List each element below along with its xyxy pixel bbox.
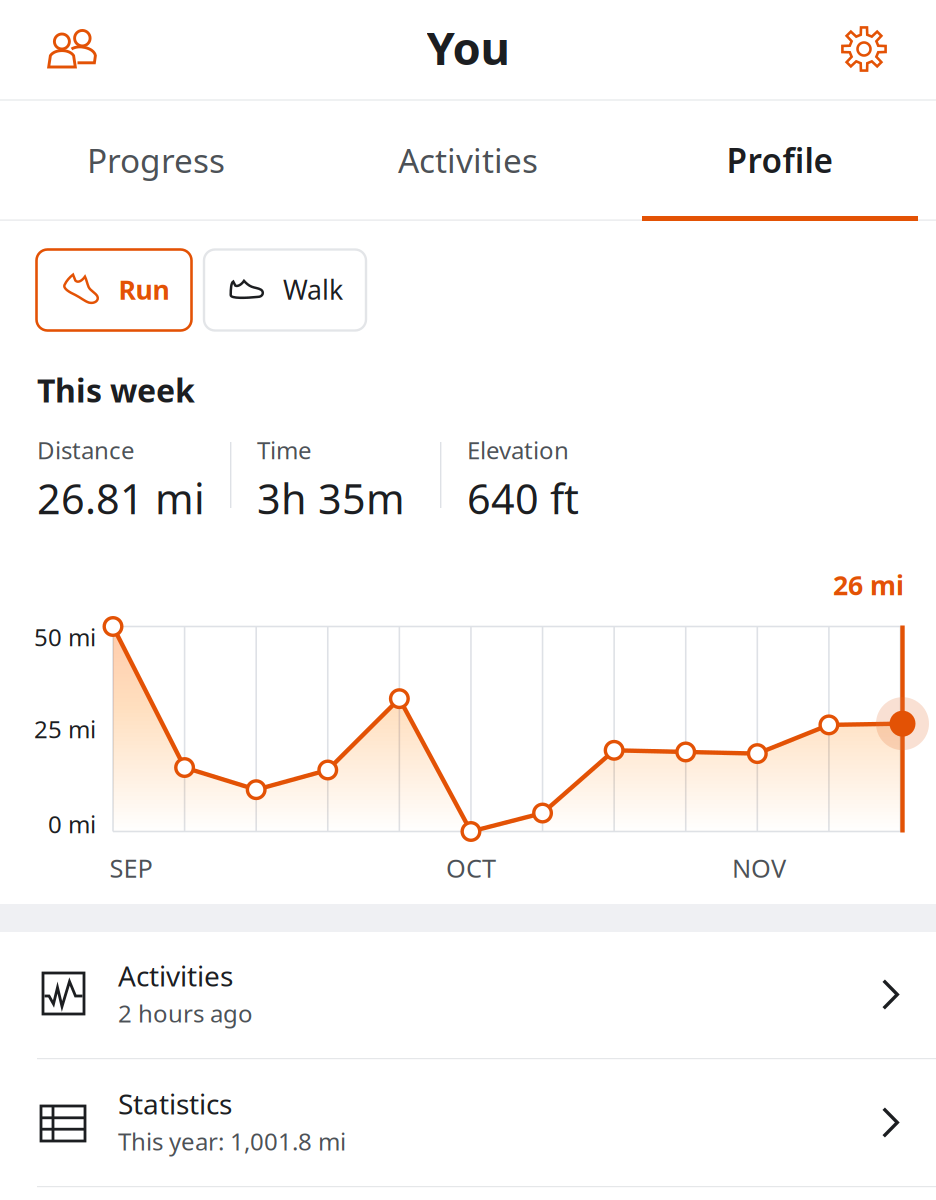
staticText: 3h 35m	[257, 471, 405, 526]
button[interactable]: Run	[36, 249, 191, 330]
staticText: NOV	[732, 851, 786, 885]
button[interactable]: Activities	[312, 100, 624, 220]
staticText: 0 mi	[48, 808, 96, 840]
staticText: Progress	[87, 138, 225, 182]
staticText: 25 mi	[34, 713, 96, 745]
staticText: 50 mi	[34, 621, 96, 653]
staticText: 26 mi	[833, 567, 904, 603]
staticText: You	[426, 17, 509, 78]
button[interactable]: Statistics	[0, 1060, 936, 1186]
staticText: Distance	[37, 434, 135, 466]
staticText: Time	[257, 434, 312, 466]
staticText: Activities	[118, 957, 233, 994]
staticText: Walk	[283, 272, 343, 307]
staticText: Profile	[726, 138, 833, 182]
button[interactable]: Athletes	[16, 0, 128, 98]
button[interactable]: Settings	[808, 0, 920, 98]
staticText: 2 hours ago	[118, 997, 253, 1029]
staticText: 26.81 mi	[37, 471, 205, 526]
button[interactable]: Activities	[0, 932, 936, 1058]
staticText: Run	[118, 272, 169, 307]
staticText: SEP	[109, 851, 152, 885]
staticText: Elevation	[467, 434, 569, 466]
staticText: This year: 1,001.8 mi	[118, 1125, 346, 1157]
staticText: This week	[37, 369, 195, 411]
staticText: OCT	[446, 851, 496, 885]
staticText: Activities	[398, 138, 538, 182]
button[interactable]: Profile	[624, 100, 936, 220]
button[interactable]: Walk	[204, 249, 366, 330]
staticText: 640 ft	[467, 471, 579, 526]
button[interactable]: Progress	[0, 100, 312, 220]
staticText: Statistics	[118, 1085, 232, 1122]
